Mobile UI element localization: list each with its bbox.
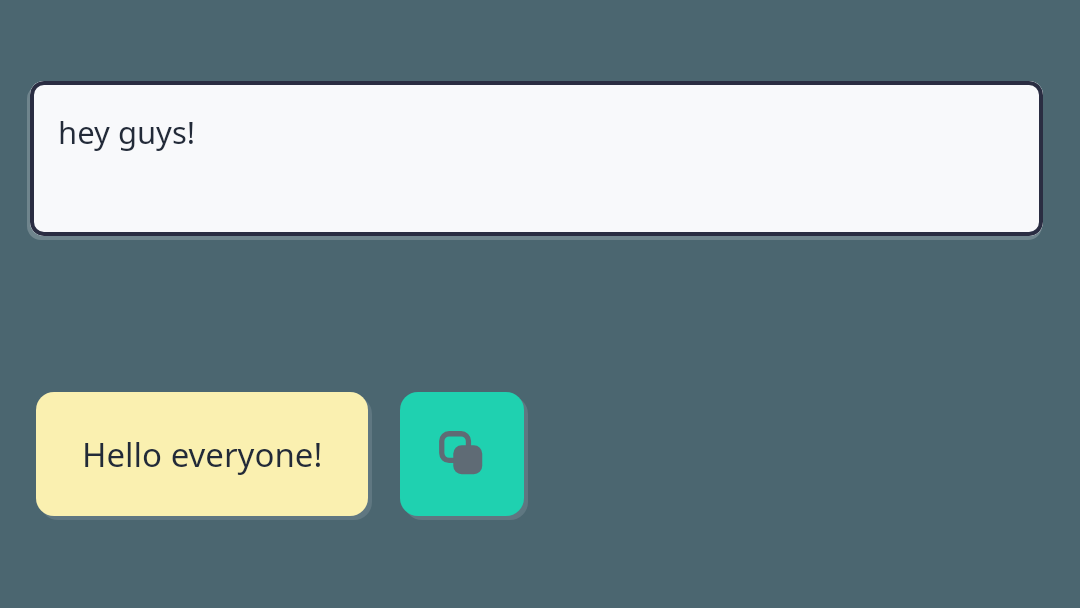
button[interactable]: Hello everyone! (36, 392, 368, 516)
button[interactable]: Copy (400, 392, 524, 516)
staticText: Hello everyone! (82, 432, 323, 477)
button[interactable]: hey guys! (30, 81, 1043, 236)
staticText: hey guys! (58, 111, 196, 153)
